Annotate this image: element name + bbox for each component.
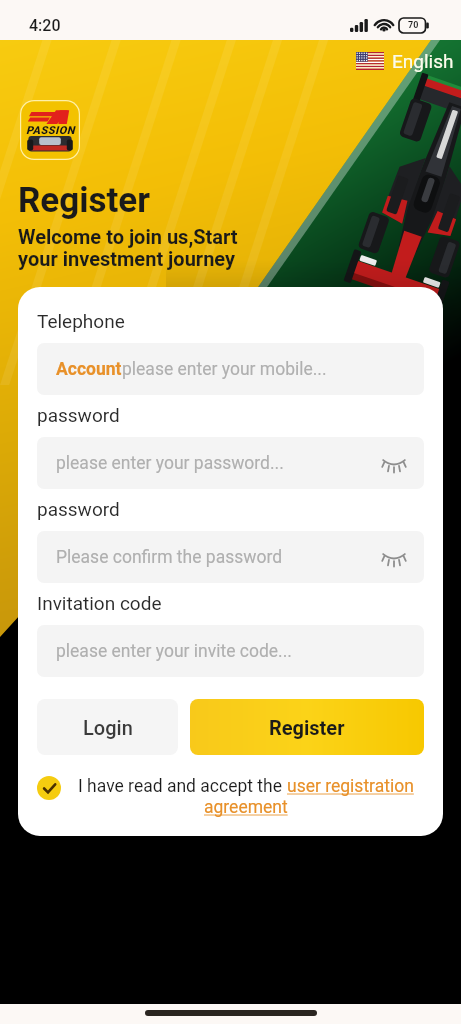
staticText: Register [269, 716, 345, 739]
staticText: Login [83, 716, 133, 739]
staticText: Invitation code [37, 592, 162, 614]
staticText: Telephone [37, 310, 125, 332]
button[interactable]: F1 Passion logo [20, 100, 80, 160]
button[interactable]: Please confirm the password [37, 531, 424, 583]
button[interactable]: Show password [382, 451, 406, 475]
staticText: 70 [408, 20, 419, 31]
staticText: PASSION [26, 124, 75, 137]
button[interactable]: please enter your password... [37, 437, 424, 489]
button[interactable]: Accept agreement [37, 776, 61, 800]
button[interactable]: Show password [382, 545, 406, 569]
staticText: Account [56, 359, 122, 380]
button[interactable]: please enter your invite code... [37, 625, 424, 677]
staticText: Please confirm the password [56, 547, 283, 568]
staticText: please enter your invite code... [56, 641, 292, 662]
button[interactable]: user registration [287, 776, 414, 797]
button[interactable]: agreement [204, 797, 288, 818]
staticText: I have read and accept the [78, 776, 287, 797]
button[interactable]: English [354, 48, 456, 74]
button[interactable]: Account [37, 343, 424, 395]
staticText: English [392, 50, 454, 72]
staticText: Welcome to join us,Start your investment… [18, 225, 238, 271]
button[interactable]: Login [37, 699, 178, 755]
staticText: 4:20 [29, 16, 61, 35]
staticText: please enter your mobile... [122, 359, 327, 380]
staticText: please enter your password... [56, 453, 284, 474]
staticText: password [37, 404, 120, 426]
staticText: password [37, 498, 120, 520]
button[interactable]: Register [190, 699, 424, 755]
staticText: Register [18, 180, 151, 221]
